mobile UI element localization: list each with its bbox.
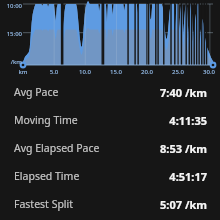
button[interactable]: Avg Elapsed Pace: [0, 134, 220, 162]
staticText: 10:00: [1, 2, 22, 10]
staticText: 15:00: [1, 30, 22, 38]
button[interactable]: Elapsed Time: [0, 162, 220, 190]
button[interactable]: Fastest Split: [0, 190, 220, 218]
staticText: Avg Pace: [14, 85, 59, 99]
staticText: km: [16, 68, 30, 76]
staticText: 5.0: [45, 68, 63, 76]
staticText: Elapsed Time: [14, 169, 80, 183]
button[interactable]: Avg Pace: [0, 78, 220, 106]
button[interactable]: Pace over distance chart: [0, 0, 220, 78]
staticText: 8:53 /km: [160, 141, 207, 156]
staticText: Moving Time: [14, 113, 78, 127]
staticText: 4:11:35: [169, 113, 207, 128]
button[interactable]: Moving Time: [0, 106, 220, 134]
staticText: 7:40 /km: [160, 85, 207, 100]
staticText: Avg Elapsed Pace: [14, 141, 100, 155]
staticText: 4:51:17: [169, 169, 207, 184]
staticText: Fastest Split: [14, 197, 74, 211]
staticText: 5:07 /km: [160, 197, 207, 212]
staticText: 10.0: [76, 68, 94, 76]
staticText: 15.0: [107, 68, 125, 76]
staticText: 20.0: [138, 68, 156, 76]
staticText: /km: [1, 58, 22, 66]
staticText: 30.0: [200, 68, 218, 76]
staticText: 25.0: [169, 68, 187, 76]
